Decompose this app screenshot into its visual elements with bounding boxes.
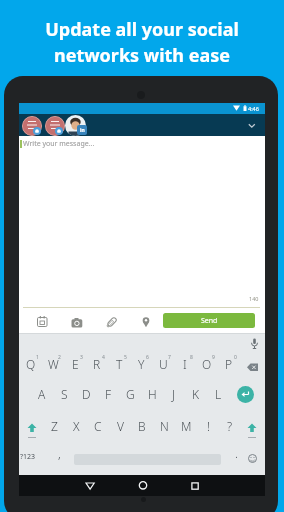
button[interactable]: Z bbox=[45, 417, 63, 435]
button[interactable]: ? bbox=[221, 417, 239, 435]
button[interactable]: Send bbox=[163, 313, 255, 328]
staticText: ?123 bbox=[20, 452, 36, 462]
staticText: N bbox=[160, 418, 169, 434]
button[interactable]: M bbox=[177, 417, 195, 435]
staticText: U bbox=[159, 356, 168, 372]
staticText: S bbox=[61, 386, 68, 402]
button[interactable]: D bbox=[77, 385, 95, 403]
button[interactable] bbox=[138, 481, 148, 491]
staticText: M bbox=[181, 418, 192, 434]
staticText: 3 bbox=[80, 354, 83, 361]
staticText: 4:46 bbox=[248, 105, 259, 112]
staticText: 1 bbox=[36, 354, 39, 361]
staticText: , bbox=[58, 445, 61, 461]
button[interactable]: L bbox=[209, 385, 227, 403]
button[interactable]: E bbox=[66, 355, 84, 373]
staticText: 140 bbox=[249, 295, 259, 302]
staticText: V bbox=[117, 418, 124, 434]
button[interactable]: O bbox=[198, 355, 216, 373]
button[interactable]: J bbox=[165, 385, 183, 403]
button[interactable]: S bbox=[55, 385, 73, 403]
staticText: Update all your social networks with eas… bbox=[0, 17, 284, 68]
button[interactable]: Y bbox=[132, 355, 150, 373]
button[interactable]: R bbox=[88, 355, 106, 373]
staticText: A bbox=[38, 386, 46, 402]
staticText: P bbox=[225, 356, 233, 372]
staticText: Q bbox=[26, 356, 36, 372]
button[interactable]: X bbox=[67, 417, 85, 435]
staticText: L bbox=[215, 386, 222, 402]
button[interactable] bbox=[248, 122, 256, 130]
button[interactable]: U bbox=[154, 355, 172, 373]
staticText: Send bbox=[201, 316, 218, 326]
staticText: 9 bbox=[212, 354, 215, 361]
button[interactable] bbox=[45, 116, 65, 136]
button[interactable] bbox=[85, 482, 95, 490]
button[interactable] bbox=[22, 116, 42, 136]
staticText: T bbox=[116, 356, 123, 372]
staticText: in bbox=[80, 127, 85, 134]
staticText: E bbox=[72, 356, 79, 372]
staticText: O bbox=[202, 356, 212, 372]
button[interactable] bbox=[27, 423, 37, 433]
button[interactable]: C bbox=[89, 417, 107, 435]
button[interactable]: ! bbox=[199, 417, 217, 435]
button[interactable]: H bbox=[143, 385, 161, 403]
staticText: G bbox=[126, 386, 135, 402]
staticText: 6 bbox=[146, 354, 149, 361]
staticText: Z bbox=[51, 418, 58, 434]
button[interactable]: I bbox=[176, 355, 194, 373]
button[interactable]: W bbox=[44, 355, 62, 373]
staticText: C bbox=[94, 418, 102, 434]
staticText: 7 bbox=[168, 354, 171, 361]
staticText: 4 bbox=[102, 354, 105, 361]
button[interactable] bbox=[191, 482, 199, 490]
staticText: ? bbox=[227, 418, 233, 434]
button[interactable]: G bbox=[121, 385, 139, 403]
staticText: I bbox=[183, 356, 187, 372]
button[interactable]: Q bbox=[22, 355, 40, 373]
staticText: K bbox=[192, 386, 200, 402]
button[interactable]: B bbox=[133, 417, 151, 435]
staticText: F bbox=[105, 386, 112, 402]
staticText: H bbox=[148, 386, 157, 402]
staticText: R bbox=[93, 356, 101, 372]
staticText: Y bbox=[138, 356, 145, 372]
staticText: D bbox=[82, 386, 91, 402]
button[interactable]: V bbox=[111, 417, 129, 435]
staticText: X bbox=[73, 418, 80, 434]
staticText: 2 bbox=[58, 354, 61, 361]
staticText: W bbox=[48, 356, 59, 372]
button[interactable] bbox=[247, 363, 259, 372]
staticText: . bbox=[235, 445, 238, 461]
button[interactable] bbox=[237, 386, 254, 403]
button[interactable] bbox=[65, 115, 86, 136]
button[interactable]: N bbox=[155, 417, 173, 435]
staticText: 0 bbox=[234, 354, 237, 361]
staticText: J bbox=[172, 386, 176, 402]
staticText: Write your message... bbox=[23, 139, 95, 149]
staticText: 8 bbox=[190, 354, 193, 361]
button[interactable]: F bbox=[99, 385, 117, 403]
staticText: B bbox=[138, 418, 146, 434]
staticText: ! bbox=[207, 418, 210, 434]
button[interactable] bbox=[247, 423, 257, 433]
button[interactable]: A bbox=[33, 385, 51, 403]
button[interactable]: T bbox=[110, 355, 128, 373]
staticText: 5 bbox=[124, 354, 127, 361]
button[interactable]: P bbox=[220, 355, 238, 373]
button[interactable]: K bbox=[187, 385, 205, 403]
